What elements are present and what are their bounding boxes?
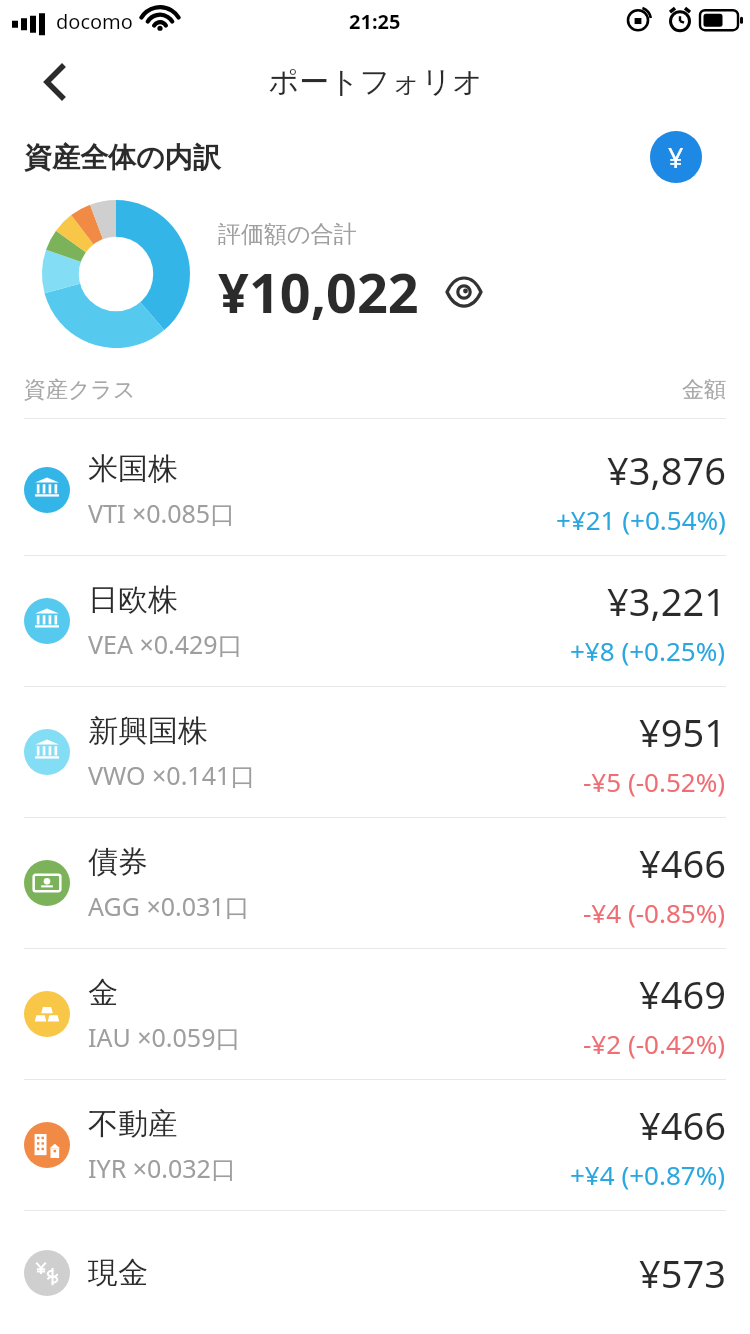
staticText: 資産全体の内訳 xyxy=(24,140,221,175)
staticText: IAU ×0.059口 xyxy=(88,1020,241,1054)
button[interactable]: Back xyxy=(24,54,80,110)
staticText: ¥951 xyxy=(639,706,726,758)
staticText: VEA ×0.429口 xyxy=(88,627,243,661)
staticText: 評価額の合計 xyxy=(218,220,357,249)
staticText: -¥5 (-0.52%) xyxy=(583,764,726,799)
button[interactable]: 米国株 xyxy=(0,425,750,555)
staticText: ¥469 xyxy=(639,968,726,1020)
staticText: ¥3,876 xyxy=(607,444,726,496)
button[interactable]: 現金 xyxy=(0,1211,750,1334)
button[interactable]: Toggle amount visibility xyxy=(441,269,487,315)
staticText: ¥3,221 xyxy=(607,575,726,627)
staticText: -¥4 (-0.85%) xyxy=(583,895,726,930)
staticText: ポートフォリオ xyxy=(268,63,483,101)
staticText: 米国株 xyxy=(88,450,178,488)
staticText: VWO ×0.141口 xyxy=(88,758,256,792)
button[interactable]: Currency toggle yen dollar xyxy=(624,131,728,183)
staticText: 債券 xyxy=(88,843,148,881)
button[interactable]: 不動産 xyxy=(0,1080,750,1210)
staticText: -¥2 (-0.42%) xyxy=(583,1026,726,1061)
button[interactable]: 日欧株 xyxy=(0,556,750,686)
staticText: 金額 xyxy=(682,376,726,404)
button[interactable]: 債券 xyxy=(0,818,750,948)
staticText: ¥10,022 xyxy=(218,255,419,329)
staticText: +¥8 (+0.25%) xyxy=(570,633,726,668)
staticText: +¥4 (+0.87%) xyxy=(570,1157,726,1192)
staticText: ¥466 xyxy=(639,837,726,889)
staticText: docomo xyxy=(56,8,133,35)
staticText: AGG ×0.031口 xyxy=(88,889,250,923)
staticText: 21:25 xyxy=(349,8,401,35)
staticText: 現金 xyxy=(88,1254,148,1292)
staticText: ¥466 xyxy=(639,1099,726,1151)
staticText: VTI ×0.085口 xyxy=(88,496,236,530)
staticText: ¥573 xyxy=(639,1247,726,1299)
staticText: IYR ×0.032口 xyxy=(88,1151,236,1185)
staticText: 日欧株 xyxy=(88,581,178,619)
button[interactable]: 新興国株 xyxy=(0,687,750,817)
button[interactable]: 金 xyxy=(0,949,750,1079)
staticText: 資産クラス xyxy=(24,376,136,404)
staticText: $ xyxy=(668,138,685,176)
staticText: 金 xyxy=(88,974,118,1012)
staticText: +¥21 (+0.54%) xyxy=(556,502,726,537)
staticText: 新興国株 xyxy=(88,712,208,750)
staticText: ¥ xyxy=(668,139,684,176)
staticText: 不動産 xyxy=(88,1105,178,1143)
